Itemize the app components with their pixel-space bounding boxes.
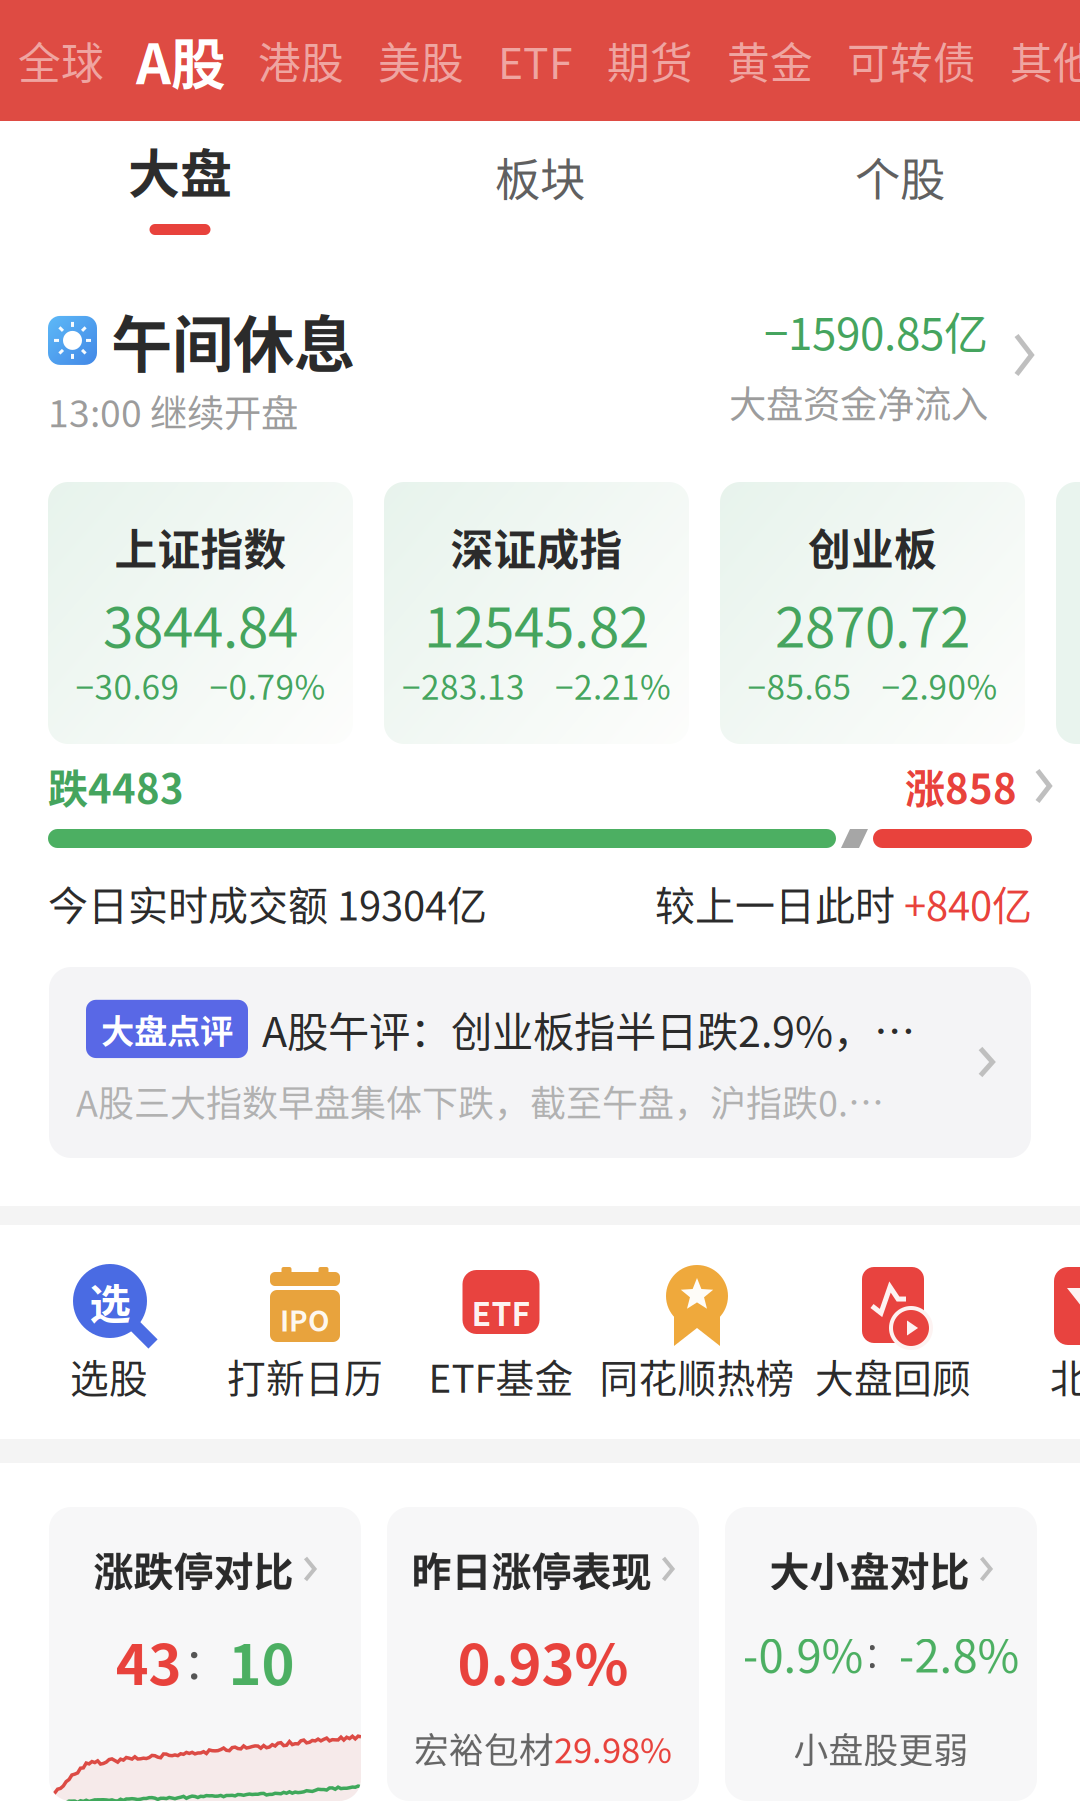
staticText: 午间休息 [111,296,355,385]
staticText: 大盘回顾 [815,1348,971,1404]
staticText: −0.79% [209,661,325,709]
staticText: 大盘点评 [101,1005,233,1053]
button[interactable]: ETF [481,0,590,121]
button[interactable]: 港股 [241,0,361,121]
staticText: 选股 [70,1348,148,1404]
button[interactable]: 其他 [993,0,1080,121]
staticText: 大小盘对比 [769,1540,969,1598]
staticText: 选 [89,1271,130,1331]
button[interactable]: 大盘 [0,121,360,255]
staticText: 宏裕包材 [414,1723,554,1773]
staticText: 43 [115,1620,181,1701]
button[interactable]: 午间休息 [0,255,1080,482]
staticText: 跌4483 [48,757,184,815]
button[interactable]: 大盘回顾 [795,1225,991,1439]
button[interactable]: ETF [403,1225,599,1439]
staticText: 美股 [378,30,464,91]
button[interactable]: 涨跌停对比 [49,1507,361,1801]
button[interactable]: 昨日涨停表现 [387,1507,699,1801]
staticText: 昨日涨停表现 [411,1540,651,1598]
staticText: −1590.85亿 [764,299,988,363]
staticText: 可转债 [847,30,976,91]
staticText: −85.65 [747,661,851,709]
staticText: 0.93% [457,1620,628,1701]
staticText: 其他 [1010,30,1080,91]
staticText: 2870.72 [775,584,970,663]
staticText: ETF [498,30,573,91]
button[interactable]: 板块 [360,121,720,255]
staticText: -2.8% [898,1620,1019,1686]
button[interactable]: 深证成指 [384,482,689,744]
staticText: 同花顺热榜 [599,1348,794,1404]
button[interactable]: 黄金 [710,0,830,121]
staticText: A股 [136,21,226,100]
button[interactable]: 同花顺热榜 [599,1225,795,1439]
staticText: 13:00 继续开盘 [48,384,298,438]
staticText: +840亿 [904,874,1032,932]
staticText: −30.69 [75,661,179,709]
button[interactable]: 北交 [991,1225,1080,1439]
staticText: -0.9% [742,1620,863,1686]
staticText: 深证成指 [450,516,622,578]
staticText: 较上一日此时 [655,874,904,932]
staticText: 12545.82 [424,584,649,663]
staticText: 涨跌停对比 [93,1540,293,1598]
button[interactable]: IPO [207,1225,403,1439]
staticText: IPO [280,1299,330,1339]
staticText: 北交 [1050,1348,1080,1404]
staticText: 创业板 [808,516,937,578]
staticText: 打新日历 [227,1348,383,1404]
staticText: 个股 [855,144,945,210]
button[interactable]: 大盘点评 [49,967,1031,1158]
staticText: 黄金 [727,30,813,91]
button[interactable]: 选 [11,1225,207,1439]
button[interactable]: 美股 [361,0,481,121]
staticText: 今日实时成交额 19304亿 [48,874,487,932]
button[interactable]: 上证指数 [48,482,353,744]
staticText: ETF基金 [428,1348,573,1404]
staticText: ： [183,1630,226,1691]
staticText: 板块 [495,144,585,210]
staticText: A股三大指数早盘集体下跌，截至午盘，沪指跌0.… [76,1075,884,1127]
staticText: 小盘股更弱 [793,1723,968,1773]
staticText: A股午评：创业板指半日跌2.9%，… [262,999,915,1059]
staticText: −2.90% [881,661,997,709]
button[interactable]: 期货 [590,0,710,121]
button[interactable]: 可转债 [830,0,993,121]
button[interactable]: 全球 [1,0,121,121]
staticText: 涨858 [905,757,1017,815]
staticText: −283.13 [402,661,525,709]
staticText: −2.21% [555,661,671,709]
staticText: ETF [471,1289,530,1335]
staticText: 期货 [607,30,693,91]
staticText: 大盘 [128,133,232,208]
button[interactable]: 大小盘对比 [725,1507,1037,1801]
staticText: 全球 [18,30,104,91]
button[interactable]: 跌4483 [0,757,1080,815]
button[interactable]: 创业板 [720,482,1025,744]
staticText: ： [863,1628,898,1678]
staticText: 3844.84 [103,584,298,663]
staticText: 10 [228,1620,294,1701]
staticText: 29.98% [554,1723,672,1773]
staticText: 大盘资金净流入 [729,375,988,429]
staticText: 港股 [258,30,344,91]
staticText: 上证指数 [114,516,286,578]
button[interactable]: 个股 [720,121,1080,255]
button[interactable]: A股 [121,0,241,121]
